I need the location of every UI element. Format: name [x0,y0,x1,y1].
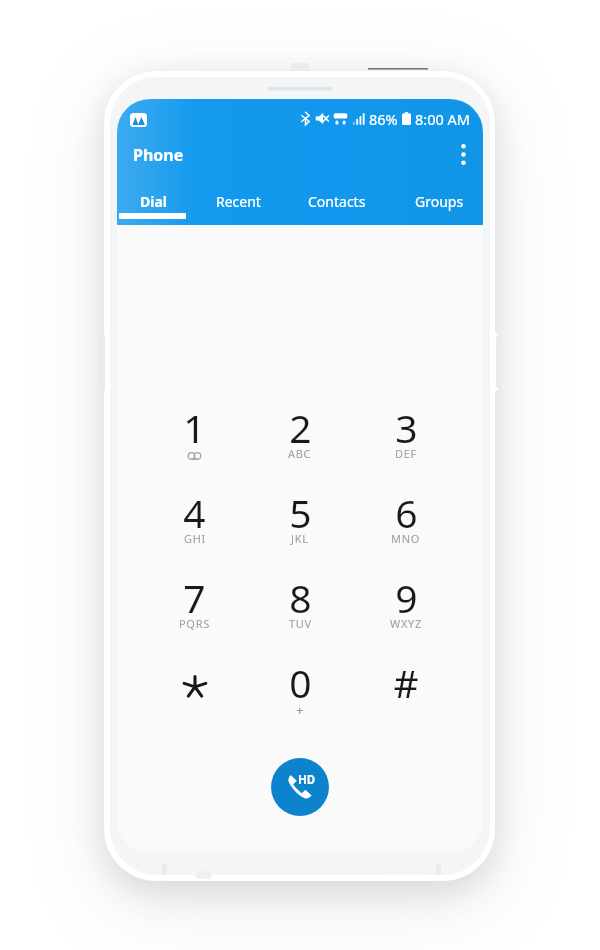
button[interactable]: 3 [353,386,459,471]
staticText: Phone [133,144,184,166]
staticText: + [296,701,304,719]
staticText: Contacts [308,192,366,211]
staticText: 6 [395,486,418,539]
staticText: 4 [183,486,206,539]
staticText: 2 [289,401,312,454]
staticText: 9 [395,571,418,624]
staticText: # [393,656,419,709]
staticText: Groups [415,192,464,211]
staticText: 1 [183,401,206,454]
staticText: 3 [395,401,418,454]
button[interactable]: 4 [142,471,247,556]
button[interactable]: 8 [247,556,353,641]
button[interactable] [142,641,247,726]
staticText: ABC [288,446,312,461]
staticText: 8:00 AM [415,109,470,129]
staticText: Dial [140,192,167,211]
staticText: 7 [183,571,206,624]
staticText: Recent [216,192,261,211]
staticText: 5 [289,486,312,539]
staticText: PQRS [179,616,210,631]
staticText: DEF [395,446,417,461]
button[interactable]: 7 [142,556,247,641]
staticText: MNO [391,531,421,546]
button[interactable]: Contacts [295,186,379,224]
button[interactable]: Recent [196,186,280,224]
staticText: WXYZ [390,616,422,631]
button[interactable]: 0 [247,641,353,726]
button[interactable]: More options [451,138,476,171]
staticText: GHI [184,531,206,546]
staticText: TUV [289,616,312,631]
button[interactable]: 2 [247,386,353,471]
staticText: HD [298,772,316,788]
staticText: 8 [289,571,312,624]
button[interactable]: 5 [247,471,353,556]
staticText: 0 [289,656,312,709]
button[interactable]: 1 [142,386,247,471]
staticText: 86% [369,109,398,129]
button[interactable]: 6 [353,471,459,556]
button[interactable]: Dial [117,186,195,224]
staticText: JKL [291,531,309,546]
button[interactable]: Call [271,758,329,816]
button[interactable]: # [353,641,459,726]
button[interactable]: 9 [353,556,459,641]
button[interactable]: Groups [397,186,481,224]
